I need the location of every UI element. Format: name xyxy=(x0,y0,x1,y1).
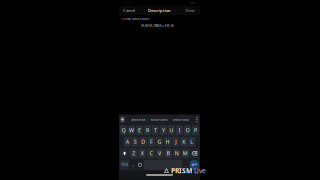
staticText: A xyxy=(126,138,129,145)
staticText: . xyxy=(185,161,186,168)
button[interactable]: I xyxy=(176,125,183,135)
button[interactable]: Backspace xyxy=(190,148,199,158)
button[interactable]: D xyxy=(140,137,147,147)
staticText: G xyxy=(157,138,161,145)
button[interactable]: Done xyxy=(182,6,198,15)
button[interactable]: K xyxy=(180,137,187,147)
button[interactable]: V xyxy=(156,148,163,158)
button[interactable]: T xyxy=(152,125,159,135)
button[interactable]: Space xyxy=(144,160,182,170)
staticText: J xyxy=(175,138,176,145)
staticText: O xyxy=(185,127,189,134)
staticText: Description xyxy=(148,8,171,13)
staticText: Done xyxy=(185,8,194,13)
staticText: L xyxy=(190,138,193,145)
staticText: SUBSCRIBE+ HCB xyxy=(141,22,174,28)
button[interactable]: G xyxy=(156,137,163,147)
staticText: S xyxy=(134,138,137,145)
staticText: X xyxy=(141,150,144,157)
button[interactable]: N xyxy=(173,148,181,158)
button[interactable]: W xyxy=(128,125,135,135)
staticText: Y xyxy=(162,127,165,134)
staticText: U xyxy=(169,127,173,134)
button[interactable]: M xyxy=(181,148,189,158)
button[interactable]: F xyxy=(148,137,155,147)
button[interactable]: Q xyxy=(120,125,127,135)
staticText: Z xyxy=(132,150,135,157)
button[interactable]: P xyxy=(192,125,199,135)
button[interactable]: S xyxy=(132,137,139,147)
button[interactable]: L xyxy=(188,137,195,147)
staticText: P xyxy=(194,127,197,134)
button[interactable]: A xyxy=(123,137,131,147)
staticText: H xyxy=(166,138,170,145)
button[interactable]: Shift xyxy=(120,148,129,158)
staticText: E xyxy=(138,127,141,134)
staticText: D xyxy=(141,138,145,145)
button[interactable]: X xyxy=(138,148,146,158)
staticText: SUBSCRIBE xyxy=(131,118,145,121)
button[interactable]: Y xyxy=(160,125,167,135)
staticText: ?123 xyxy=(121,163,128,166)
staticText: SUBSCRIBERS xyxy=(150,118,167,121)
staticText: W xyxy=(129,127,134,134)
staticText: F xyxy=(150,138,153,145)
staticText: T xyxy=(154,127,157,134)
button[interactable]: C xyxy=(147,148,155,158)
button[interactable]: J xyxy=(172,137,179,147)
staticText: C xyxy=(149,150,152,157)
button[interactable]: U xyxy=(168,125,175,135)
button[interactable]: Comma xyxy=(130,160,136,170)
button[interactable]: Z xyxy=(130,148,138,158)
button[interactable]: ?123 xyxy=(120,160,129,170)
button[interactable]: Emoji xyxy=(137,160,143,170)
staticText: N xyxy=(175,150,179,157)
staticText: Live xyxy=(194,166,206,175)
button[interactable]: Cancel xyxy=(121,6,137,15)
button[interactable]: Period xyxy=(183,160,188,170)
button[interactable]: More xyxy=(194,114,200,124)
staticText: R xyxy=(146,127,149,134)
button[interactable]: R xyxy=(144,125,151,135)
button[interactable]: E xyxy=(136,125,143,135)
button[interactable]: Enter xyxy=(189,160,199,170)
button[interactable]: Clipboard xyxy=(119,114,126,124)
button[interactable]: O xyxy=(184,125,191,135)
staticText: B xyxy=(167,150,170,157)
staticText: SUBSCRIBED xyxy=(173,118,189,121)
staticText: Q xyxy=(122,127,126,134)
staticText: 100MG SUBSCRIBERS xyxy=(121,17,149,20)
staticText: PRISM xyxy=(171,166,192,175)
staticText: K xyxy=(182,138,185,145)
staticText: V xyxy=(158,150,161,157)
button[interactable]: H xyxy=(164,137,171,147)
button[interactable]: B xyxy=(164,148,172,158)
staticText: , xyxy=(133,161,134,168)
staticText: M xyxy=(183,150,188,157)
staticText: Cancel xyxy=(123,8,135,13)
staticText: I xyxy=(178,127,180,134)
